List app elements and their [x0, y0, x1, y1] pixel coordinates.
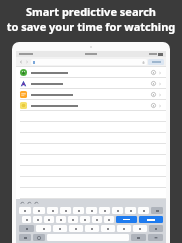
button[interactable]	[139, 216, 163, 223]
button[interactable]: More info	[16, 67, 166, 78]
button[interactable]	[85, 225, 99, 232]
staticText: to save your time for watching	[0, 19, 182, 34]
button[interactable]	[112, 207, 123, 214]
button[interactable]	[16, 122, 166, 133]
button[interactable]: Numbers	[19, 234, 31, 241]
button[interactable]	[149, 225, 163, 232]
button[interactable]	[80, 216, 90, 223]
button[interactable]	[44, 216, 54, 223]
button[interactable]: More info	[151, 103, 156, 108]
button[interactable]	[53, 225, 67, 232]
button[interactable]	[16, 166, 166, 177]
button[interactable]	[117, 225, 131, 232]
button[interactable]: Backspace	[151, 207, 163, 214]
button[interactable]: More info	[151, 81, 156, 86]
button[interactable]	[16, 177, 166, 188]
button[interactable]	[31, 59, 147, 65]
button[interactable]	[138, 207, 149, 214]
button[interactable]	[133, 225, 147, 232]
button[interactable]	[33, 207, 45, 214]
button[interactable]: More info	[151, 92, 156, 97]
button[interactable]	[16, 155, 166, 166]
button[interactable]	[19, 207, 31, 214]
button[interactable]	[47, 207, 58, 214]
button[interactable]: Paste	[34, 201, 39, 206]
button[interactable]	[16, 133, 166, 144]
button[interactable]: More info	[16, 100, 166, 111]
button[interactable]	[125, 207, 136, 214]
button[interactable]	[16, 188, 166, 199]
button[interactable]: More info	[16, 78, 166, 89]
button[interactable]: Settings	[131, 234, 146, 241]
button[interactable]	[16, 111, 166, 122]
button[interactable]: Forward	[24, 59, 30, 65]
button[interactable]: Hide keyboard	[148, 234, 163, 241]
button[interactable]	[19, 225, 34, 232]
button[interactable]	[99, 207, 110, 214]
button[interactable]: Redo	[27, 201, 32, 206]
button[interactable]	[69, 225, 83, 232]
button[interactable]	[86, 207, 97, 214]
button[interactable]	[92, 216, 102, 223]
button[interactable]	[60, 207, 71, 214]
button[interactable]: More info	[151, 70, 156, 75]
staticText: Smart predictive search	[0, 4, 182, 19]
button[interactable]: Emoji	[33, 234, 45, 241]
button[interactable]	[68, 216, 78, 223]
button[interactable]	[101, 225, 115, 232]
button[interactable]	[104, 216, 114, 223]
button[interactable]	[73, 207, 84, 214]
button[interactable]	[33, 216, 42, 223]
button[interactable]	[36, 225, 51, 232]
button[interactable]: More info	[16, 89, 166, 100]
button[interactable]	[148, 59, 164, 65]
button[interactable]: Undo	[20, 201, 25, 206]
button[interactable]	[22, 216, 31, 223]
button[interactable]	[56, 216, 66, 223]
button[interactable]: Back	[18, 59, 24, 65]
button[interactable]	[116, 216, 137, 223]
button[interactable]	[16, 144, 166, 155]
